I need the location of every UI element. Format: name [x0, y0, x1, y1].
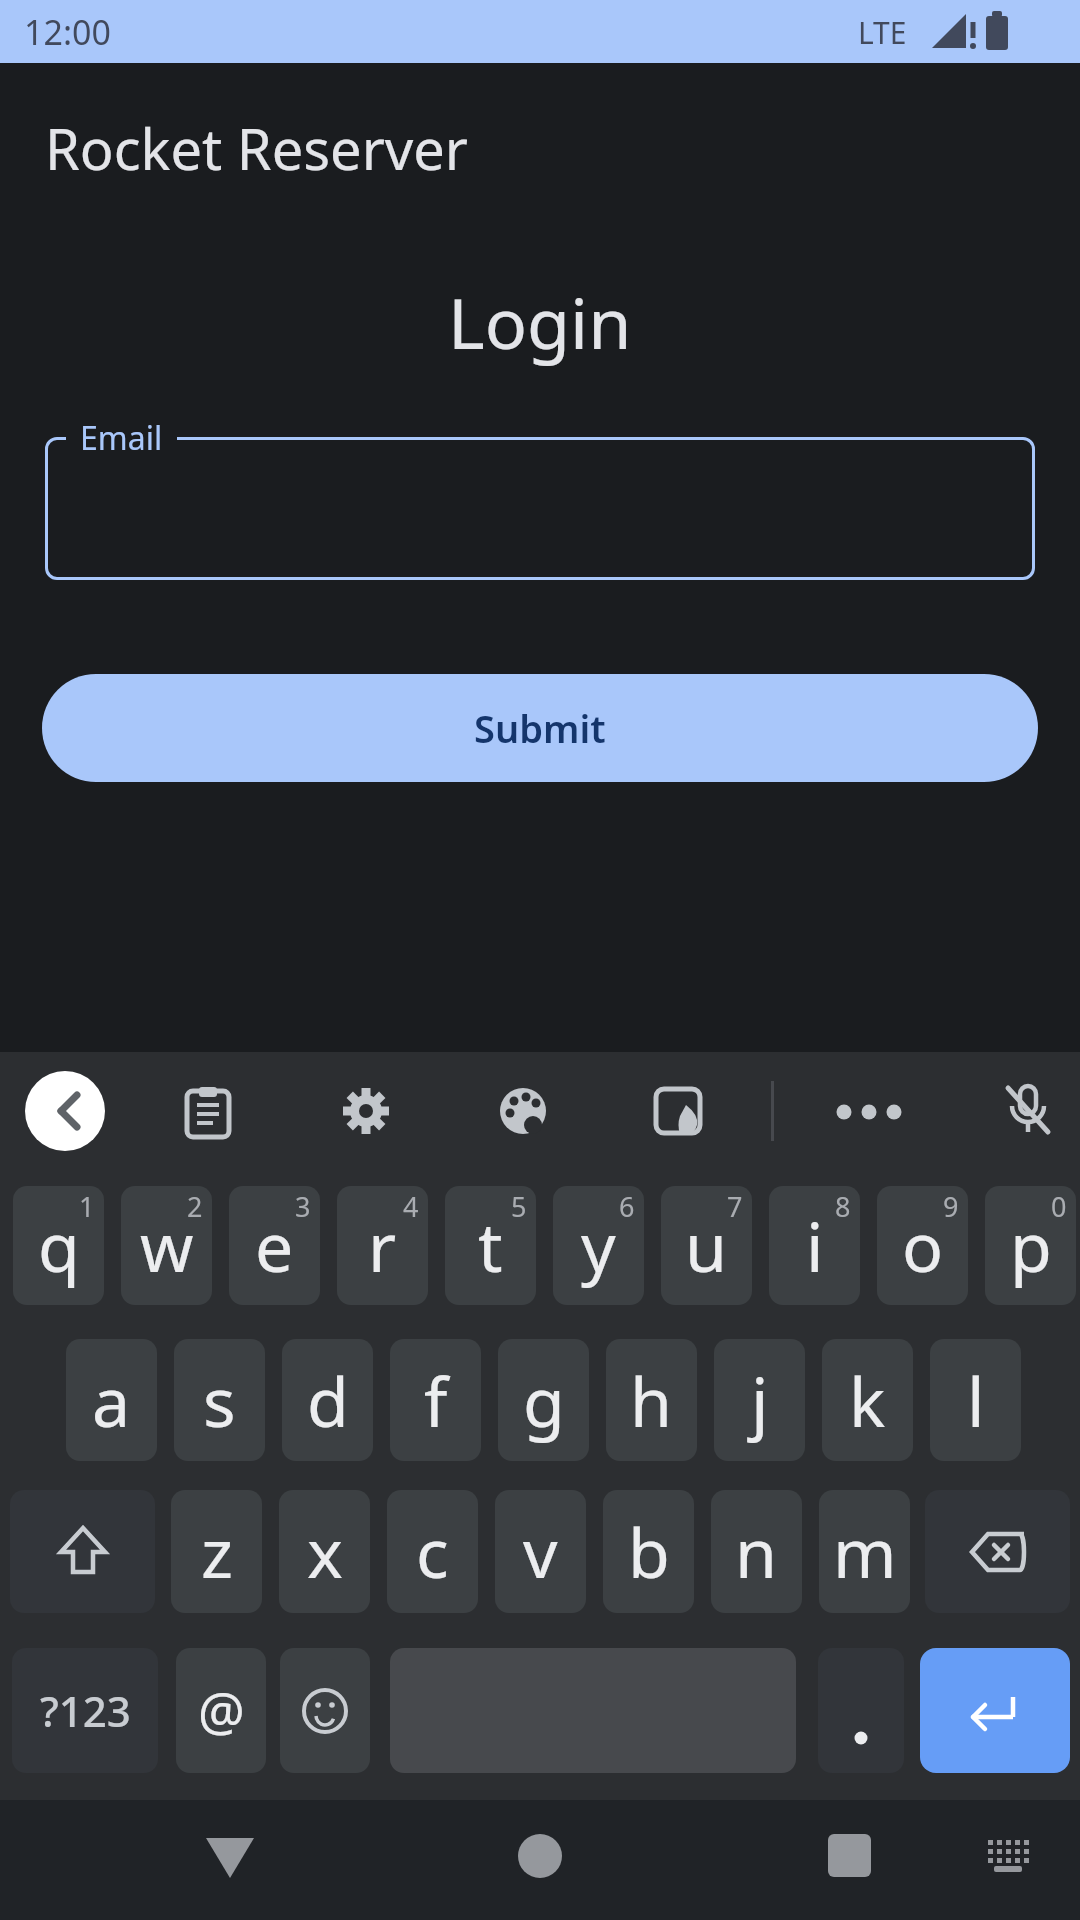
button[interactable]: h — [606, 1339, 697, 1461]
button[interactable]: r — [337, 1186, 428, 1305]
staticText: 8 — [835, 1188, 851, 1225]
button[interactable] — [518, 1834, 562, 1878]
button[interactable] — [656, 1089, 702, 1135]
button[interactable]: @ — [176, 1648, 266, 1773]
button[interactable] — [25, 1071, 105, 1151]
staticText: ?123 — [40, 1682, 131, 1739]
button[interactable]: k — [822, 1339, 913, 1461]
button[interactable] — [10, 1490, 155, 1613]
button[interactable]: z — [171, 1490, 262, 1613]
staticText: e — [255, 1199, 294, 1292]
staticText: 4 — [403, 1188, 419, 1225]
staticText: h — [630, 1354, 673, 1447]
staticText: k — [849, 1354, 886, 1447]
staticText: Login — [448, 274, 632, 369]
staticText: y — [581, 1199, 616, 1292]
staticText: Submit — [474, 702, 606, 754]
button[interactable] — [920, 1648, 1070, 1773]
staticText: c — [416, 1505, 449, 1598]
staticText: Rocket Reserver — [45, 110, 468, 186]
staticText: v — [523, 1505, 558, 1598]
button[interactable]: x — [279, 1490, 370, 1613]
button[interactable]: a — [66, 1339, 157, 1461]
staticText: w — [140, 1199, 194, 1292]
staticText: 7 — [727, 1188, 743, 1225]
staticText: m — [833, 1505, 897, 1598]
staticText: u — [685, 1199, 728, 1292]
button[interactable]: q — [13, 1186, 104, 1305]
staticText: 1 — [79, 1188, 95, 1225]
button[interactable]: s — [174, 1339, 265, 1461]
button[interactable] — [280, 1648, 370, 1773]
button[interactable] — [45, 437, 1035, 580]
button[interactable]: g — [498, 1339, 589, 1461]
button[interactable]: t — [445, 1186, 536, 1305]
staticText: i — [806, 1199, 824, 1292]
staticText: r — [368, 1199, 397, 1292]
staticText: f — [424, 1354, 448, 1447]
button[interactable] — [342, 1087, 390, 1135]
staticText: 9 — [943, 1188, 959, 1225]
button[interactable]: w — [121, 1186, 212, 1305]
staticText: Email — [80, 416, 163, 460]
staticText: b — [628, 1505, 670, 1598]
staticText: a — [92, 1354, 131, 1447]
staticText: n — [735, 1505, 778, 1598]
staticText: o — [902, 1199, 944, 1292]
button[interactable]: y — [553, 1186, 644, 1305]
staticText: t — [478, 1199, 503, 1292]
staticText: LTE — [858, 12, 907, 53]
button[interactable] — [925, 1490, 1070, 1613]
button[interactable]: n — [711, 1490, 802, 1613]
staticText: x — [307, 1505, 343, 1598]
button[interactable]: j — [714, 1339, 805, 1461]
staticText: 12:00 — [24, 9, 111, 55]
staticText: 0 — [1051, 1188, 1067, 1225]
button[interactable]: p — [985, 1186, 1076, 1305]
button[interactable]: l — [930, 1339, 1021, 1461]
button[interactable] — [204, 1836, 256, 1880]
button[interactable]: d — [282, 1339, 373, 1461]
button[interactable] — [828, 1834, 871, 1877]
staticText: j — [751, 1354, 769, 1447]
button[interactable]: f — [390, 1339, 481, 1461]
staticText: q — [38, 1199, 80, 1292]
staticText: 2 — [187, 1188, 203, 1225]
staticText: g — [523, 1354, 565, 1447]
staticText: d — [307, 1354, 349, 1447]
button[interactable]: c — [387, 1490, 478, 1613]
button[interactable] — [499, 1087, 547, 1135]
button[interactable]: m — [819, 1490, 910, 1613]
staticText: 5 — [511, 1188, 527, 1225]
button[interactable]: e — [229, 1186, 320, 1305]
staticText: s — [203, 1354, 236, 1447]
staticText: @ — [198, 1675, 245, 1746]
button[interactable] — [984, 1838, 1032, 1874]
button[interactable]: Submit — [42, 674, 1038, 782]
button[interactable] — [818, 1648, 904, 1773]
staticText: p — [1010, 1199, 1052, 1292]
button[interactable]: v — [495, 1490, 586, 1613]
button[interactable] — [185, 1087, 233, 1135]
staticText: z — [201, 1505, 233, 1598]
button[interactable]: o — [877, 1186, 968, 1305]
button[interactable]: i — [769, 1186, 860, 1305]
staticText: 6 — [619, 1188, 635, 1225]
staticText: l — [967, 1354, 985, 1447]
button[interactable]: u — [661, 1186, 752, 1305]
button[interactable]: b — [603, 1490, 694, 1613]
staticText: 3 — [295, 1188, 311, 1225]
button[interactable] — [1004, 1084, 1054, 1140]
button[interactable]: ?123 — [12, 1648, 158, 1773]
